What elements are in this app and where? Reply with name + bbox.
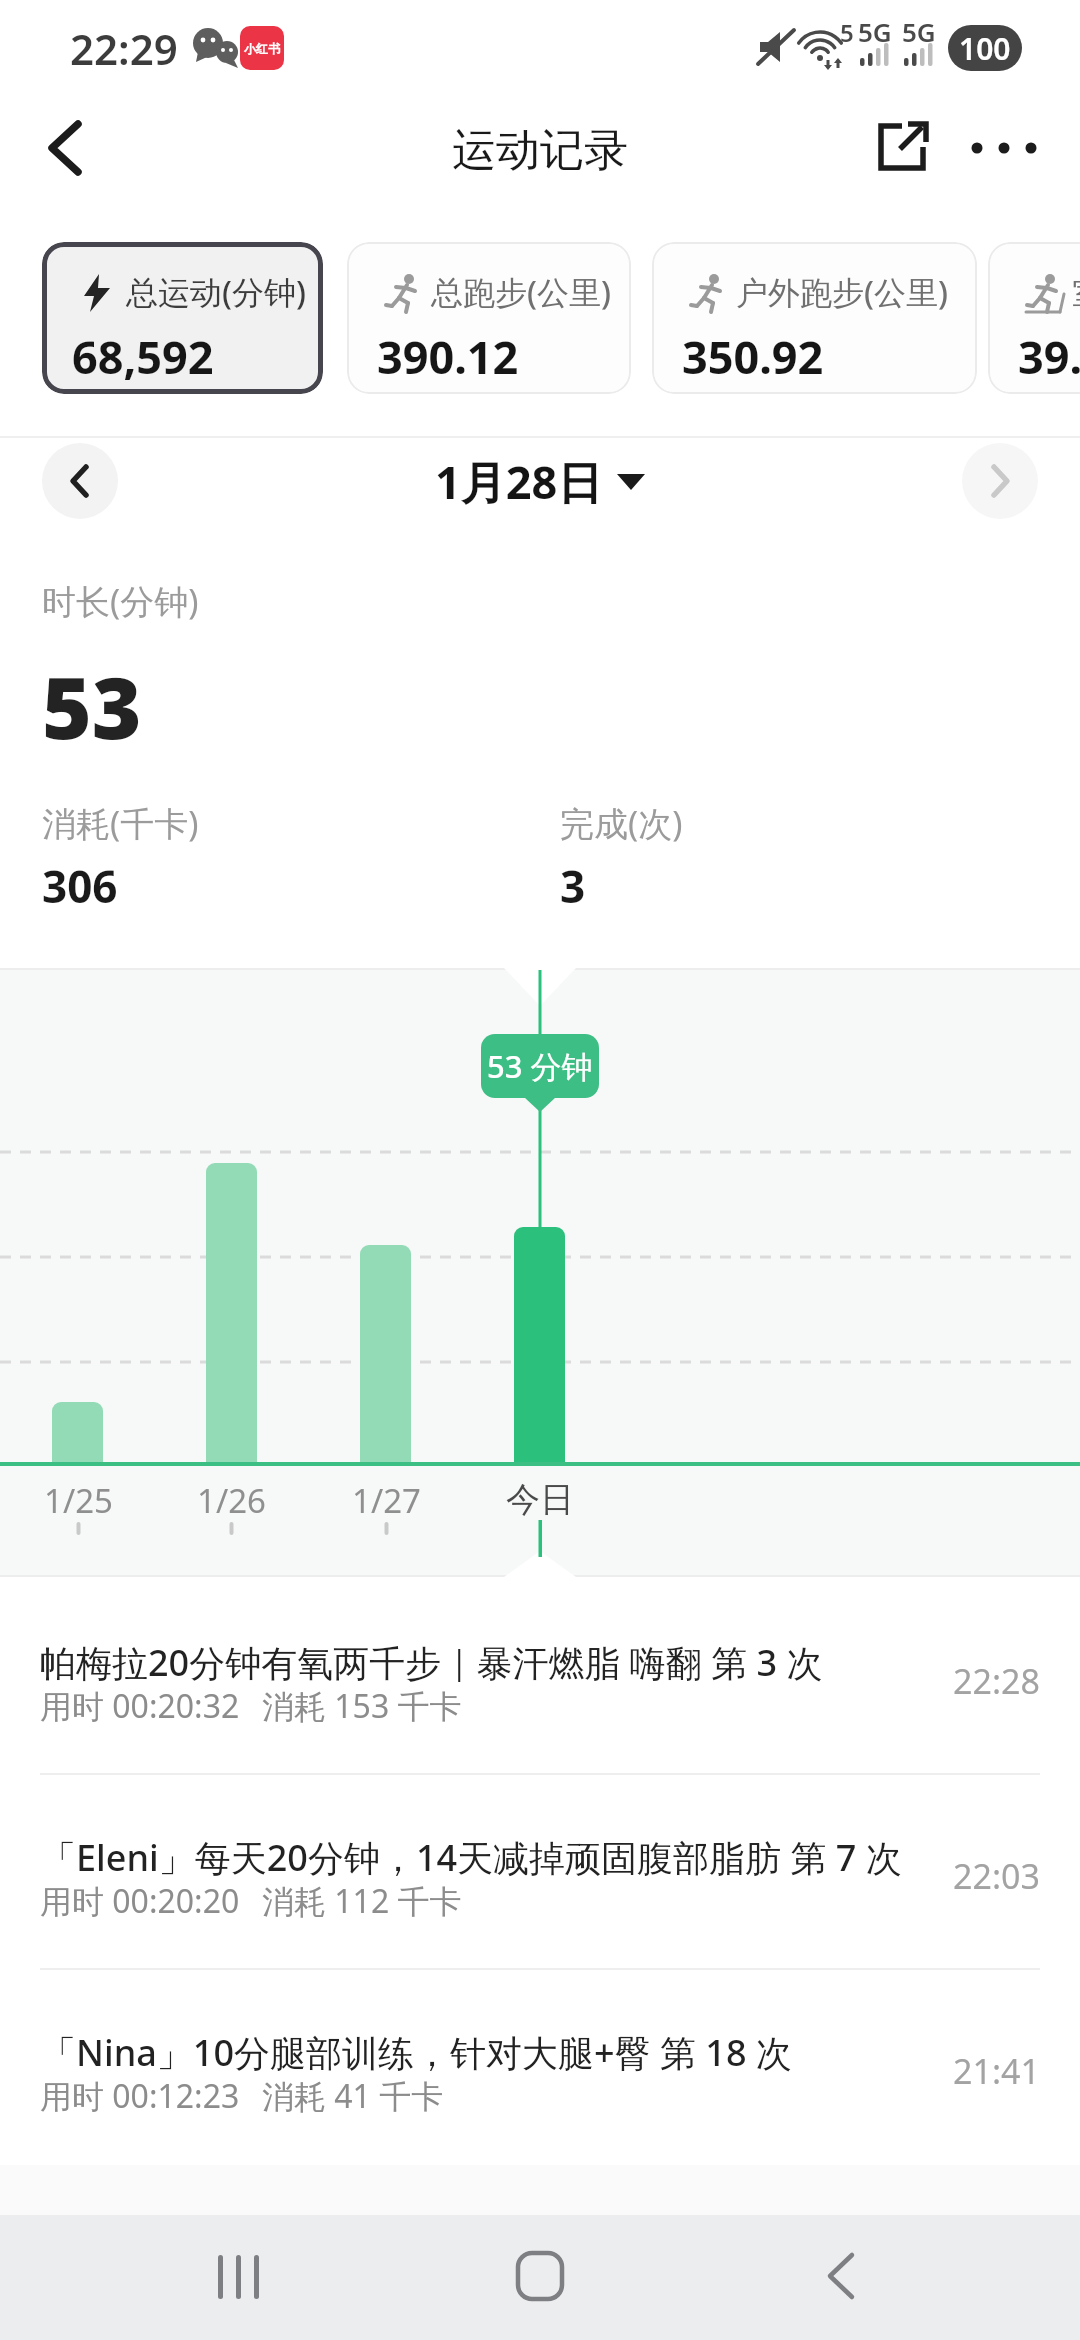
- staticText: 100: [959, 28, 1011, 69]
- button[interactable]: 1月28日: [380, 443, 700, 519]
- staticText: 运动记录: [452, 123, 628, 178]
- staticText: 用时 00:12:23: [40, 2074, 240, 2116]
- button[interactable]: 总跑步(公里): [347, 242, 631, 394]
- button[interactable]: [962, 118, 1052, 178]
- staticText: 5: [840, 16, 854, 46]
- staticText: 消耗 153 千卡: [262, 1684, 462, 1726]
- button[interactable]: 「Eleni」每天20分钟，14天减掉顽固腹部脂肪 第 7 次: [0, 1815, 1080, 1975]
- staticText: 1月28日: [435, 451, 603, 512]
- staticText: 室内跑步(公里): [1072, 270, 1080, 314]
- staticText: 用时 00:20:32: [40, 1684, 240, 1726]
- button[interactable]: [190, 2225, 290, 2325]
- button[interactable]: 户外跑步(公里): [652, 242, 977, 394]
- staticText: 「Nina」10分腿部训练，针对大腿+臀 第 18 次: [40, 2028, 792, 2072]
- staticText: 用时 00:20:20: [40, 1879, 240, 1921]
- staticText: 350.92: [682, 326, 824, 382]
- staticText: 总运动(分钟): [126, 270, 306, 314]
- button[interactable]: [962, 443, 1038, 519]
- staticText: 22:03: [953, 1853, 1040, 1895]
- staticText: 「Eleni」每天20分钟，14天减掉顽固腹部脂肪 第 7 次: [40, 1833, 902, 1877]
- button[interactable]: [30, 118, 100, 182]
- staticText: 总跑步(公里): [431, 270, 611, 314]
- button[interactable]: 帕梅拉20分钟有氧两千步｜暴汗燃脂 嗨翻 第 3 次: [0, 1620, 1080, 1780]
- staticText: 消耗 41 千卡: [262, 2074, 444, 2116]
- staticText: 1/27: [352, 1478, 421, 1518]
- staticText: 5G: [902, 14, 936, 44]
- staticText: 53: [42, 648, 142, 758]
- staticText: 53 分钟: [487, 1045, 593, 1087]
- staticText: 户外跑步(公里): [736, 270, 948, 314]
- button[interactable]: [42, 443, 118, 519]
- staticText: 5G: [858, 14, 892, 44]
- button[interactable]: 总运动(分钟): [42, 242, 323, 394]
- button[interactable]: [868, 116, 934, 182]
- staticText: 1/26: [197, 1478, 266, 1518]
- staticText: 39.25: [1018, 326, 1080, 382]
- staticText: 时长(分钟): [42, 578, 199, 622]
- staticText: 68,592: [72, 326, 214, 382]
- button[interactable]: 「Nina」10分腿部训练，针对大腿+臀 第 18 次: [0, 2010, 1080, 2170]
- button[interactable]: 室内跑步(公里): [988, 242, 1080, 394]
- staticText: 消耗 112 千卡: [262, 1879, 462, 1921]
- staticText: 3: [560, 856, 586, 912]
- staticText: 完成(次): [560, 800, 683, 844]
- staticText: 390.12: [377, 326, 519, 382]
- staticText: 22:29: [70, 20, 178, 74]
- staticText: 帕梅拉20分钟有氧两千步｜暴汗燃脂 嗨翻 第 3 次: [40, 1638, 823, 1682]
- staticText: 消耗(千卡): [42, 800, 199, 844]
- button[interactable]: [490, 2225, 590, 2325]
- staticText: 22:28: [953, 1658, 1040, 1700]
- staticText: 今日: [506, 1478, 574, 1518]
- button[interactable]: [790, 2225, 890, 2325]
- staticText: 306: [42, 856, 118, 912]
- staticText: 21:41: [953, 2048, 1040, 2090]
- staticText: 小红书: [244, 41, 280, 56]
- staticText: 1/25: [44, 1478, 113, 1518]
